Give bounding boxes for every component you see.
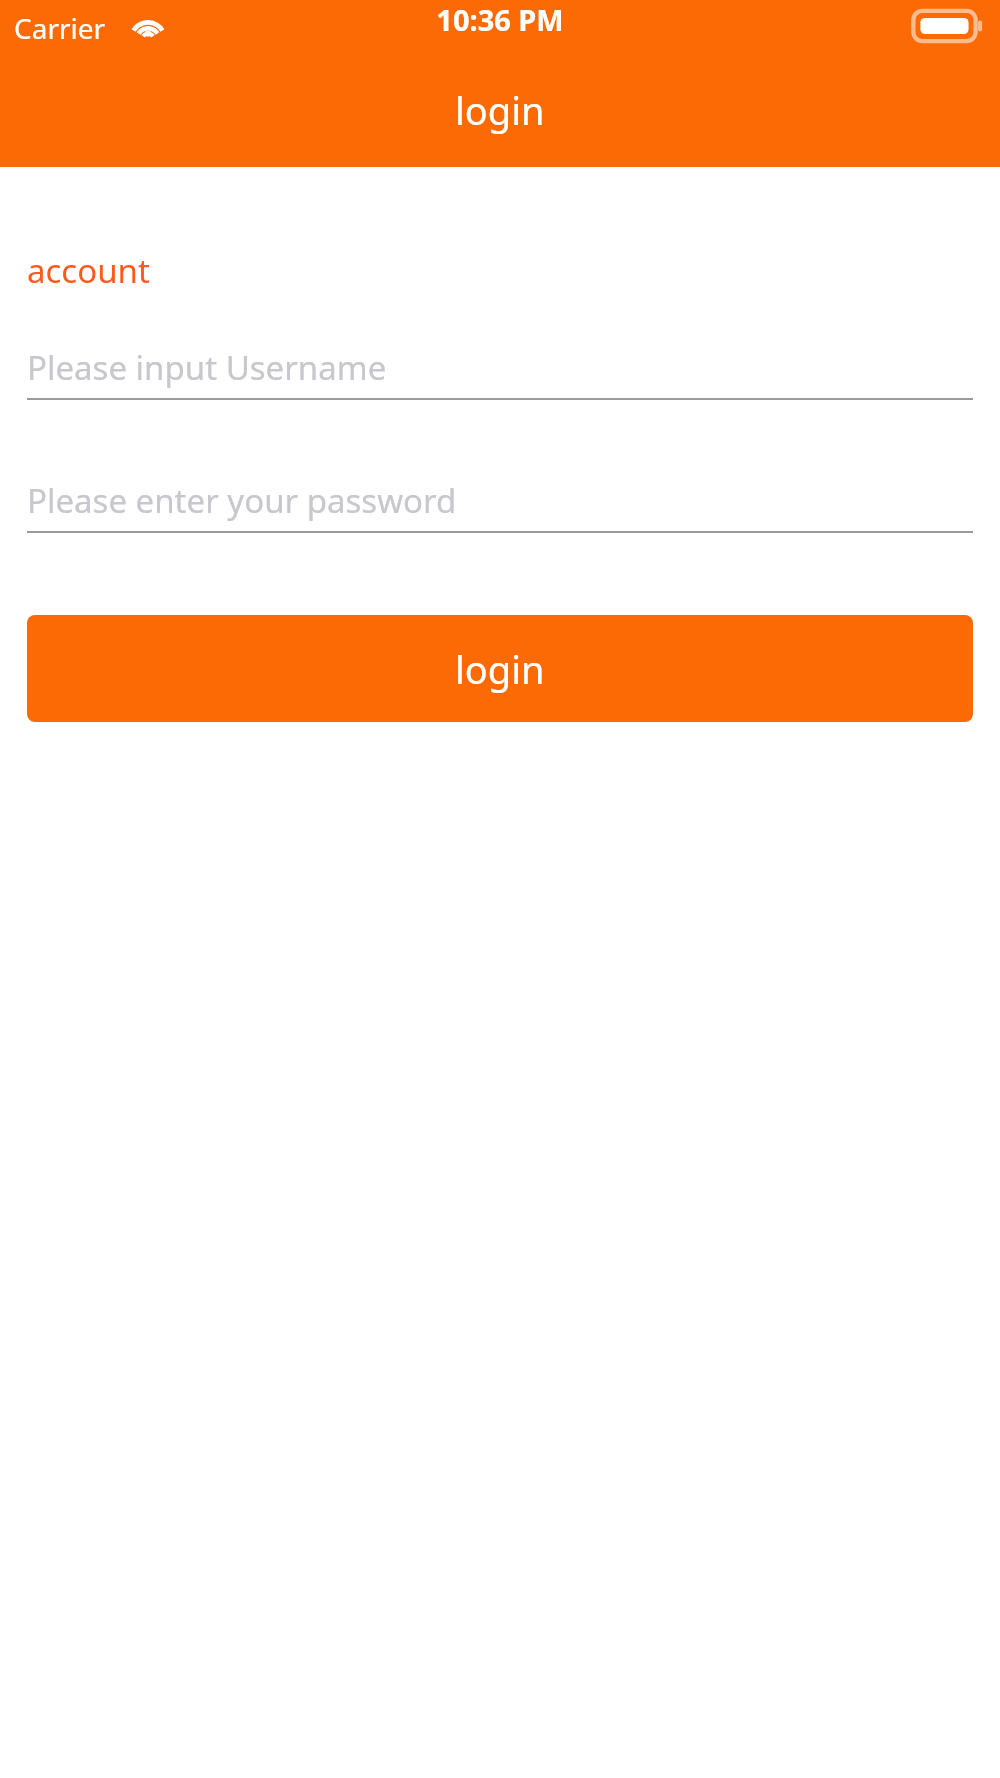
staticText: 10:36 PM [0,0,1000,39]
button[interactable]: Please enter your password [27,469,973,533]
other: Battery full [912,8,987,44]
other: Wi-Fi signal [131,11,165,41]
staticText: Carrier [14,9,106,47]
button[interactable]: login [27,615,973,722]
button[interactable]: Please input Username [27,336,973,400]
staticText: login [455,84,545,136]
button[interactable]: account [27,248,150,293]
staticText: Please enter your password [27,478,457,523]
staticText: login [455,643,545,695]
staticText: Please input Username [27,345,387,390]
